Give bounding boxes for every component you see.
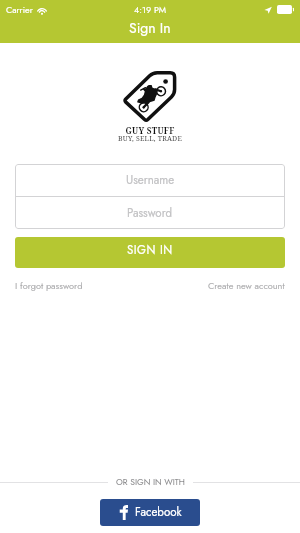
staticText: GUY STUFF	[0, 125, 300, 136]
button[interactable]: Facebook	[100, 499, 200, 526]
button[interactable]: I forgot password	[15, 279, 83, 292]
staticText: Carrier	[6, 3, 33, 16]
button[interactable]: Create new account	[208, 279, 285, 292]
staticText: Facebook	[135, 504, 182, 521]
staticText: 4:19 PM	[134, 3, 167, 16]
button[interactable]: SIGN IN	[15, 237, 285, 268]
staticText: OR SIGN IN WITH	[116, 476, 185, 488]
staticText: BUY, SELL, TRADE	[0, 134, 300, 144]
staticText: SIGN IN	[127, 242, 173, 259]
button[interactable]: Password	[15, 197, 285, 229]
staticText: Username	[126, 172, 175, 189]
button[interactable]: Username	[15, 164, 285, 196]
staticText: Sign In	[129, 18, 171, 38]
staticText: Password	[127, 205, 173, 222]
